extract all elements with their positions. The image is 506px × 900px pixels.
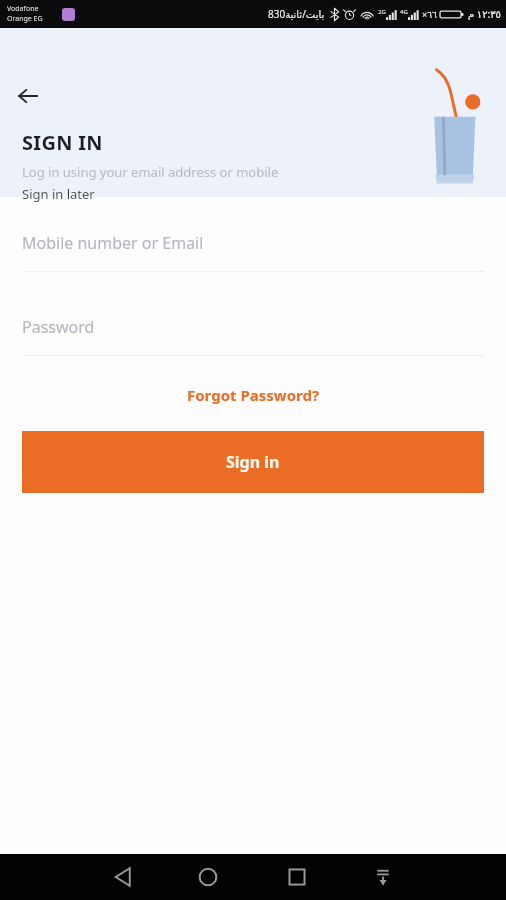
staticText: Password xyxy=(22,316,95,338)
staticText: ١٢:٣٥ م xyxy=(468,7,501,21)
staticText: Vodafone xyxy=(7,4,39,14)
staticText: Orange EG xyxy=(7,14,43,24)
staticText: Sign in later xyxy=(22,185,95,203)
button[interactable]: Home xyxy=(190,859,226,895)
button[interactable]: Sign in later xyxy=(22,185,95,203)
staticText: Mobile number or Email xyxy=(22,232,204,254)
staticText: Log in using your email address or mobil… xyxy=(22,163,279,181)
staticText: SIGN IN xyxy=(22,129,103,156)
button[interactable]: Mobile number or Email xyxy=(0,228,506,272)
staticText: ×٦٦ xyxy=(422,8,437,20)
button[interactable]: Back xyxy=(11,79,45,113)
staticText: Forgot Password? xyxy=(187,385,320,405)
button[interactable]: Hide navigation bar xyxy=(365,859,401,895)
button[interactable]: Sign in xyxy=(22,431,484,493)
button[interactable]: Back xyxy=(105,859,141,895)
staticText: 4G xyxy=(400,8,408,16)
staticText: Sign in xyxy=(226,451,280,473)
button[interactable]: Forgot Password? xyxy=(0,379,506,411)
button[interactable]: Password xyxy=(0,312,506,356)
staticText: 830بايت/ثانية xyxy=(268,7,325,21)
button[interactable]: Recents xyxy=(279,859,315,895)
staticText: 2G xyxy=(378,8,386,16)
